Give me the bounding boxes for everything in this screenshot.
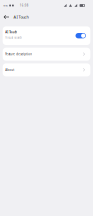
staticText: Feature description (5, 52, 32, 56)
button[interactable]: AI Touch (3, 26, 90, 45)
button[interactable]: Back (0, 11, 14, 23)
staticText: vivo (3, 4, 8, 7)
staticText: AI Touch (14, 14, 29, 20)
button[interactable]: Feature description (3, 48, 90, 61)
staticText: AI Touch (5, 30, 17, 34)
staticText: About (5, 68, 14, 72)
staticText: 16:08 (20, 4, 29, 7)
button[interactable]: About (3, 63, 90, 76)
staticText: Visual search (5, 36, 22, 39)
